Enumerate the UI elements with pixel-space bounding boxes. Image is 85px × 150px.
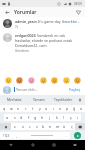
button[interactable]: t — [29, 105, 36, 112]
button[interactable]: Paylaş — [68, 86, 82, 93]
button[interactable]: Enter — [74, 132, 81, 139]
button[interactable]: Back — [3, 8, 11, 16]
staticText: b — [42, 124, 45, 129]
staticText: x — [22, 124, 24, 129]
staticText: w — [10, 106, 13, 111]
staticText: Gönderen — [15, 49, 30, 53]
staticText: haslanlar, ekinde ve podcast ortak — [15, 38, 73, 43]
staticText: n — [49, 124, 52, 129]
button[interactable]: Back — [0, 140, 22, 150]
staticText: Yorum ekle... — [16, 87, 38, 92]
staticText: z — [14, 124, 16, 129]
staticText: 08:05 — [74, 2, 83, 6]
button[interactable]: Shift — [0, 123, 11, 130]
staticText: ü — [80, 106, 83, 111]
staticText: Sonsbeek en cok — [37, 33, 66, 38]
staticText: Tamam — [33, 97, 45, 102]
button[interactable]: ?123 — [0, 132, 13, 139]
staticText: ş — [70, 115, 72, 120]
staticText: a — [6, 115, 9, 120]
button[interactable]: Emoji — [73, 76, 81, 84]
button[interactable]: Emoji — [27, 76, 35, 84]
staticText: g — [34, 115, 37, 120]
staticText: Paylaş — [69, 87, 81, 92]
button[interactable]: o — [57, 105, 64, 112]
staticText: 7s — [15, 25, 19, 29]
button[interactable]: . — [63, 132, 70, 139]
button[interactable]: ö — [61, 123, 68, 130]
button[interactable]: h — [39, 114, 46, 121]
staticText: It's game day — [38, 19, 61, 24]
button[interactable]: ş — [67, 114, 74, 121]
button[interactable]: erdgan0026 — [0, 31, 85, 55]
staticText: . — [66, 133, 67, 138]
button[interactable]: admin_yasin — [0, 17, 85, 31]
staticText: ğ — [73, 106, 76, 111]
button[interactable]: w — [8, 105, 15, 112]
button[interactable]: Emoji — [62, 76, 70, 84]
button[interactable]: v — [33, 123, 40, 130]
button[interactable]: m — [54, 123, 61, 130]
staticText: j — [49, 115, 50, 120]
staticText: e — [17, 106, 20, 111]
button[interactable]: Merhaba — [2, 95, 26, 104]
button[interactable]: z — [11, 123, 19, 130]
staticText: h — [41, 115, 44, 120]
staticText: u — [45, 106, 48, 111]
staticText: t — [32, 106, 34, 111]
staticText: p — [66, 106, 69, 111]
button[interactable]: Teşekkürler — [51, 95, 76, 104]
button[interactable]: g — [32, 114, 39, 121]
button[interactable]: ü — [78, 105, 85, 112]
button[interactable]: ç — [68, 123, 75, 130]
button[interactable]: Yorum ekle... — [14, 87, 68, 92]
button[interactable]: Emoji — [4, 76, 12, 84]
button[interactable]: a — [4, 114, 11, 121]
button[interactable]: s — [11, 114, 18, 121]
button[interactable]: y — [36, 105, 43, 112]
button[interactable]: i — [74, 114, 81, 121]
button[interactable]: Emoji — [15, 76, 23, 84]
staticText: admin_yasin — [15, 19, 37, 24]
staticText: r — [25, 106, 27, 111]
button[interactable]: u — [43, 105, 50, 112]
staticText: ö — [63, 124, 66, 129]
button[interactable]: ı — [50, 105, 57, 112]
button[interactable]: f — [25, 114, 32, 121]
button[interactable]: k — [53, 114, 60, 121]
staticText: ?123 — [3, 134, 10, 138]
button[interactable]: r — [22, 105, 29, 112]
button[interactable]: , — [13, 132, 20, 139]
button[interactable]: Share — [74, 8, 82, 16]
button[interactable]: Tamam — [26, 95, 51, 104]
staticText: k — [56, 115, 58, 120]
button[interactable]: b — [40, 123, 47, 130]
button[interactable]: Recents — [43, 140, 64, 150]
staticText: c — [29, 124, 31, 129]
button[interactable]: d — [18, 114, 25, 121]
staticText: Merhaba — [7, 97, 22, 102]
staticText: m — [56, 124, 60, 129]
button[interactable]: Home — [22, 140, 43, 150]
button[interactable]: Keyboard — [64, 140, 85, 150]
button[interactable]: Emoji — [50, 76, 58, 84]
button[interactable]: e — [15, 105, 22, 112]
staticText: , — [16, 133, 17, 138]
staticText: #workbegun — [62, 19, 82, 24]
staticText: s — [14, 115, 16, 120]
button[interactable]: Space — [20, 132, 63, 139]
button[interactable]: Backspace — [75, 123, 85, 130]
button[interactable]: Emoji — [39, 76, 47, 84]
button[interactable]: j — [46, 114, 53, 121]
button[interactable]: Voice input — [76, 95, 83, 104]
staticText: ı — [53, 106, 54, 111]
button[interactable]: p — [64, 105, 71, 112]
button[interactable]: q — [0, 105, 8, 112]
button[interactable]: n — [47, 123, 54, 130]
staticText: ç — [71, 124, 73, 129]
staticText: erdgan0026 — [15, 33, 36, 38]
button[interactable]: l — [60, 114, 67, 121]
button[interactable]: ğ — [71, 105, 78, 112]
button[interactable]: x — [19, 123, 26, 130]
button[interactable]: c — [26, 123, 33, 130]
